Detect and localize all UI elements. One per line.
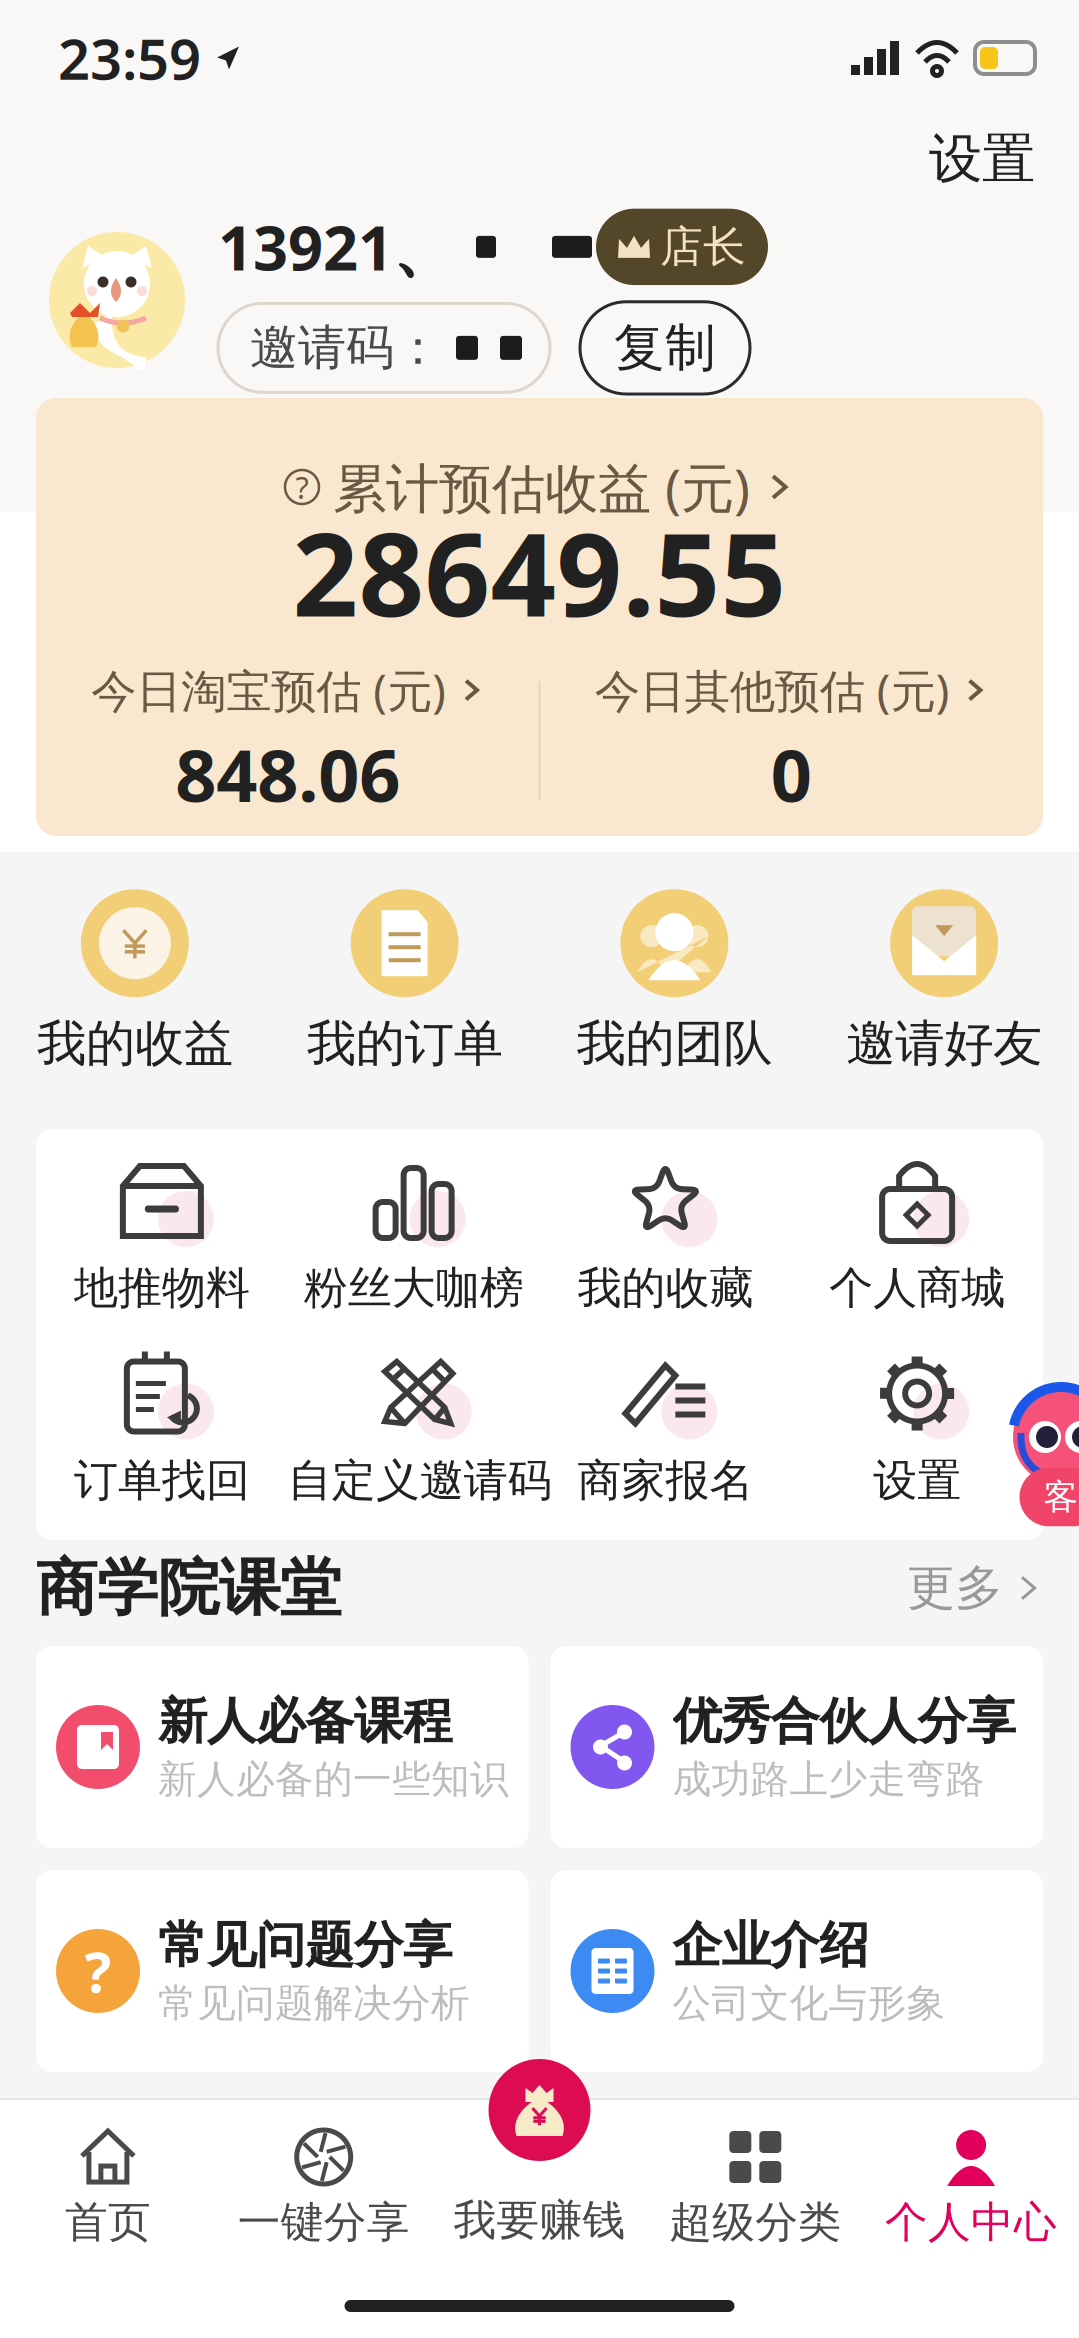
staticText: 常见问题解决分析: [158, 1980, 470, 2027]
staticText: 28649.55: [292, 496, 786, 648]
staticText: 一键分享: [238, 2196, 410, 2248]
button[interactable]: 我的团队: [539, 887, 809, 1074]
staticText: 23:59: [58, 21, 201, 95]
staticText: ?: [84, 1934, 111, 2008]
staticText: 超级分类: [669, 2196, 841, 2248]
button[interactable]: 我的收藏: [539, 1155, 791, 1315]
staticText: 商学院课堂: [36, 1550, 341, 1626]
staticText: 今日淘宝预估 (元): [91, 660, 446, 720]
staticText: ?: [295, 467, 308, 507]
staticText: 公司文化与形象: [672, 1980, 945, 2027]
staticText: 首页: [65, 2196, 151, 2248]
button[interactable]: 粉丝大咖榜: [288, 1155, 540, 1315]
button[interactable]: 设置: [791, 1347, 1043, 1507]
button[interactable]: 新人必备课程: [36, 1646, 528, 1848]
button[interactable]: 今日淘宝预估 (元): [91, 660, 484, 720]
staticText: 地推物料: [74, 1261, 250, 1315]
button[interactable]: 企业介绍: [550, 1870, 1043, 2072]
button[interactable]: ?: [36, 1870, 528, 2072]
button[interactable]: ?: [285, 452, 794, 522]
staticText: 累计预估收益 (元): [333, 452, 750, 522]
staticText: 常见问题分享: [158, 1915, 452, 1976]
staticText: 自定义邀请码: [288, 1453, 552, 1507]
button[interactable]: 商家报名: [539, 1347, 791, 1507]
staticText: 订单找回: [74, 1453, 250, 1507]
staticText: 13921、: [218, 206, 454, 288]
button[interactable]: 我的订单: [270, 887, 540, 1074]
staticText: 企业介绍: [672, 1915, 868, 1976]
staticText: 复制: [614, 317, 716, 379]
staticText: 邀请码：: [250, 318, 442, 377]
staticText: 设置: [929, 126, 1035, 192]
button[interactable]: 我要赚钱: [432, 2128, 647, 2246]
button[interactable]: 复制: [580, 302, 750, 394]
staticText: 设置: [873, 1453, 961, 1507]
button[interactable]: 在线客服: [1001, 1372, 1079, 1522]
staticText: 我的收益: [37, 1013, 233, 1074]
staticText: 商家报名: [577, 1453, 753, 1507]
staticText: 848.06: [175, 726, 400, 822]
button[interactable]: 个人商城: [791, 1155, 1043, 1315]
button[interactable]: 优秀合伙人分享: [550, 1646, 1043, 1848]
button[interactable]: 地推物料: [36, 1155, 288, 1315]
staticText: 新人必备的一些知识: [158, 1756, 509, 1803]
staticText: 我的团队: [576, 1013, 772, 1074]
button[interactable]: 设置: [907, 120, 1057, 198]
staticText: 邀请好友: [846, 1013, 1042, 1074]
button[interactable]: 首页: [0, 2128, 216, 2248]
staticText: 个人商城: [829, 1261, 1005, 1315]
staticText: 0: [771, 726, 812, 822]
staticText: 我的订单: [307, 1013, 503, 1074]
staticText: 优秀合伙人分享: [672, 1691, 1015, 1752]
button[interactable]: 超级分类: [647, 2128, 863, 2248]
button[interactable]: 更多: [907, 1558, 1043, 1617]
staticText: 店长: [660, 221, 746, 273]
staticText: 今日其他预估 (元): [595, 660, 950, 720]
staticText: 我要赚钱: [453, 2194, 625, 2246]
button[interactable]: 邀请好友: [809, 887, 1079, 1074]
staticText: 新人必备课程: [158, 1691, 452, 1752]
staticText: 更多: [907, 1558, 1003, 1617]
button[interactable]: 今日其他预估 (元): [595, 660, 988, 720]
button[interactable]: 订单找回: [36, 1347, 288, 1507]
button[interactable]: 一键分享: [216, 2128, 432, 2248]
staticText: 个人中心: [885, 2196, 1057, 2248]
button[interactable]: 自定义邀请码: [288, 1347, 540, 1507]
staticText: 成功路上少走弯路: [672, 1756, 984, 1803]
button[interactable]: 我的收益: [0, 887, 270, 1074]
staticText: 客: [1043, 1476, 1078, 1518]
staticText: 我的收藏: [577, 1261, 753, 1315]
button[interactable]: 个人中心: [863, 2128, 1079, 2248]
staticText: 粉丝大咖榜: [304, 1261, 524, 1315]
